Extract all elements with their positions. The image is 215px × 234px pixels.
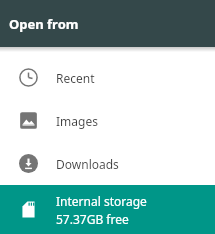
staticText: Open from: [9, 15, 79, 33]
button[interactable]: Recent: [0, 56, 215, 99]
staticText: Recent: [56, 70, 95, 86]
other: Recent: [19, 68, 38, 87]
other: Images: [19, 111, 38, 130]
staticText: Images: [56, 113, 98, 129]
staticText: Downloads: [56, 156, 119, 172]
button[interactable]: Images: [0, 99, 215, 142]
other: Internal storage: [19, 200, 38, 219]
other: Downloads: [19, 154, 38, 173]
staticText: 57.37GB free: [56, 211, 129, 227]
button[interactable]: Internal storage: [0, 185, 215, 234]
staticText: Internal storage: [56, 193, 147, 209]
button[interactable]: Downloads: [0, 142, 215, 185]
